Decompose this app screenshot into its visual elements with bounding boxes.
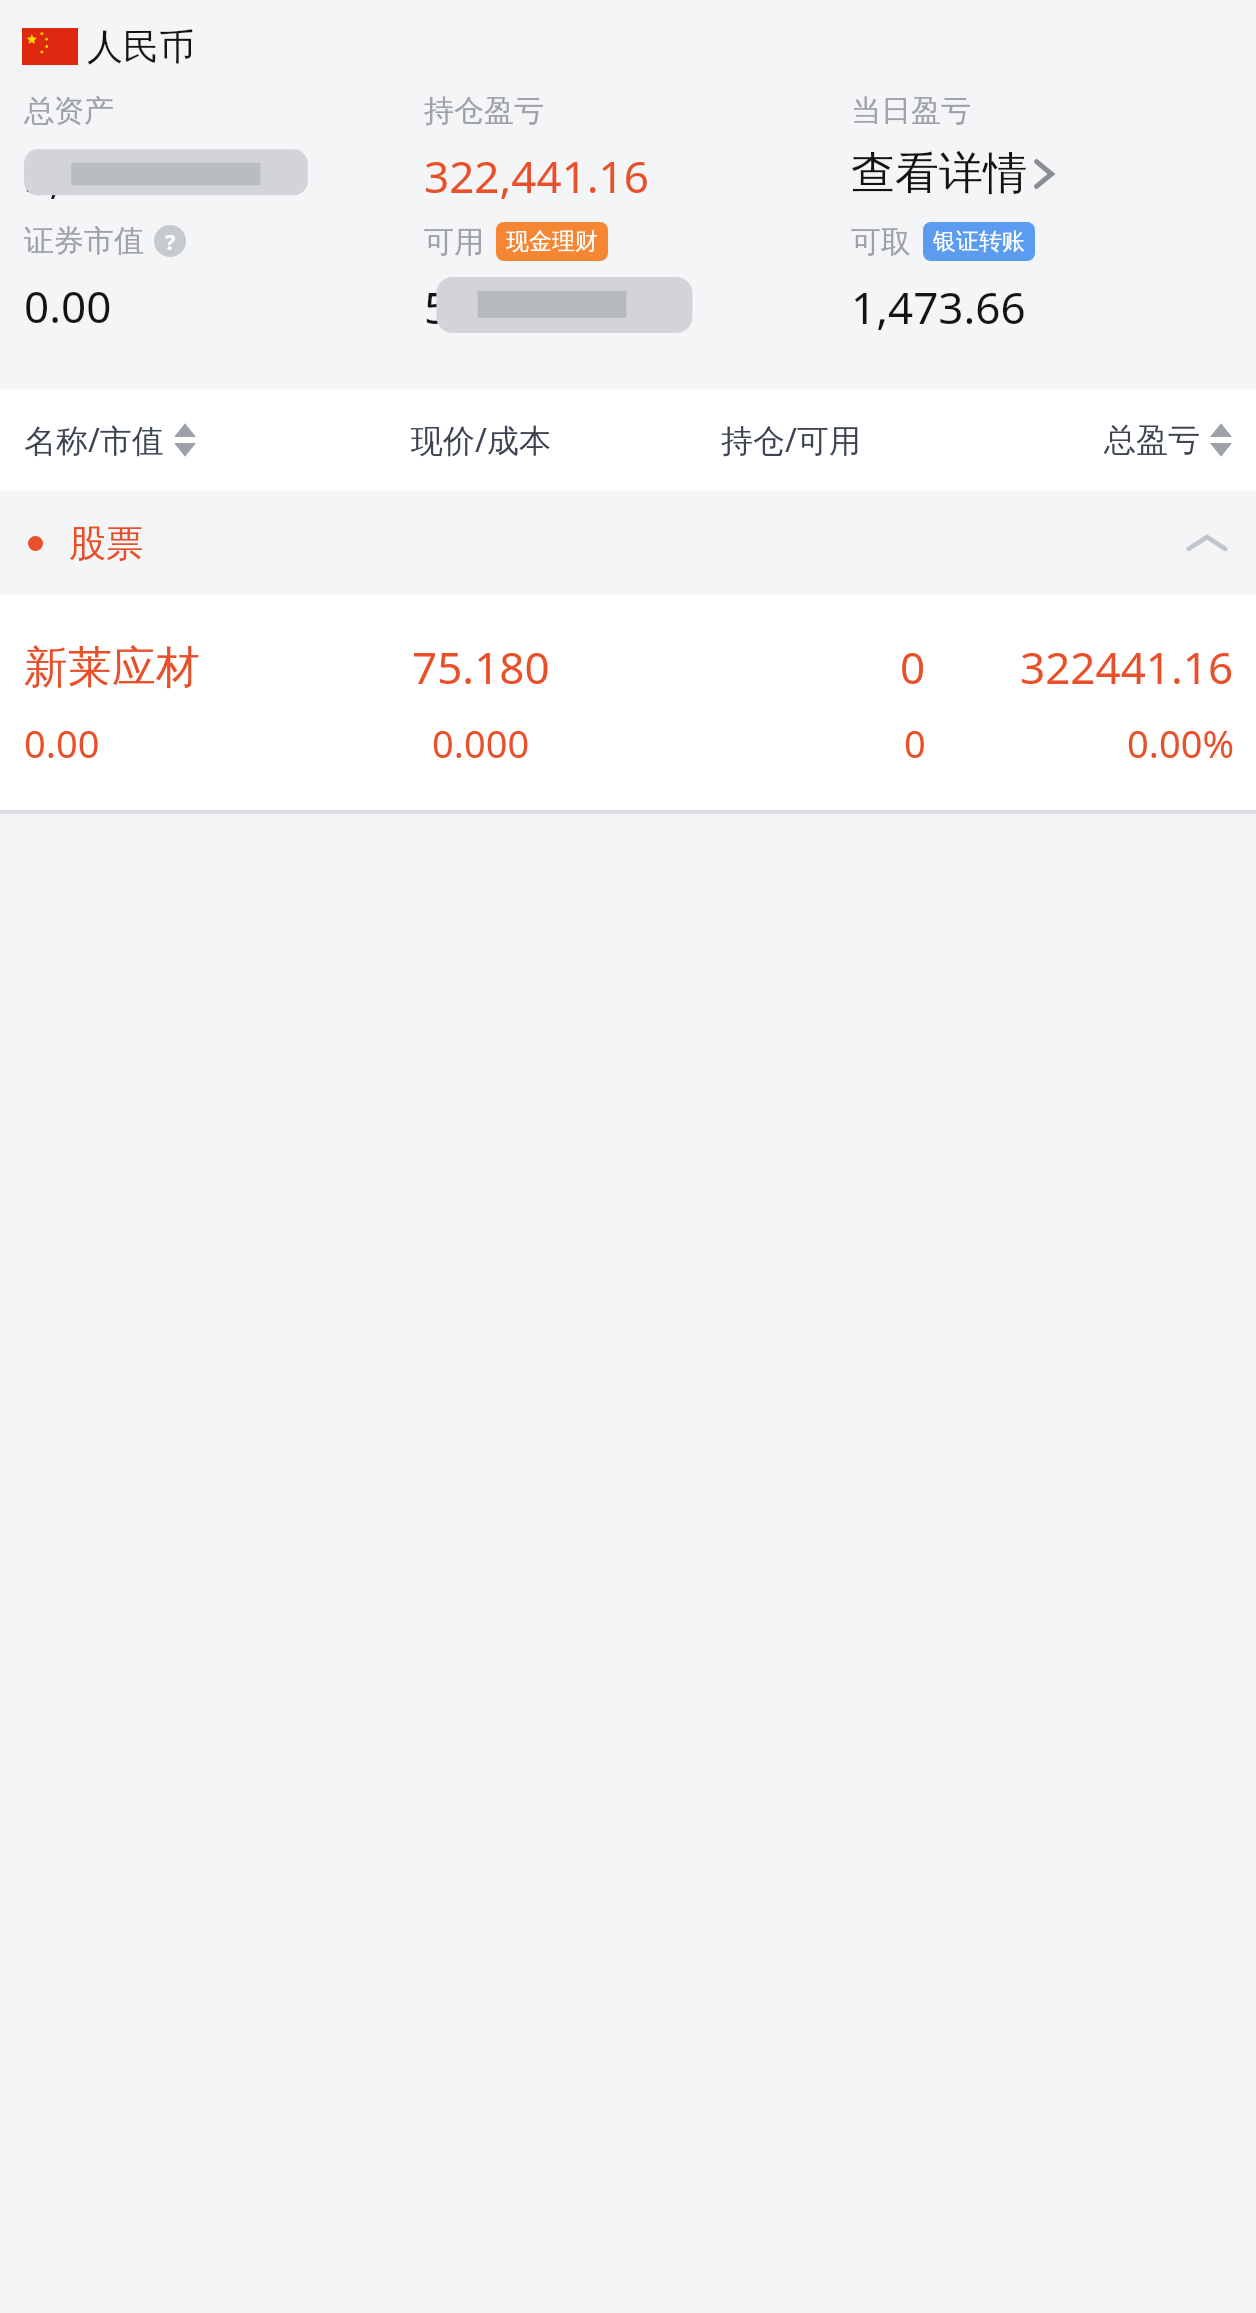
- staticText: 0.00%: [1127, 717, 1234, 769]
- staticText: 1,473.66: [851, 277, 1026, 337]
- staticText: 现价/成本: [411, 418, 551, 462]
- button[interactable]: 银证转账: [923, 222, 1035, 261]
- staticText: 新莱应材: [24, 640, 200, 695]
- button[interactable]: 查看详情: [851, 146, 1061, 201]
- staticText: 322441.16: [1020, 637, 1234, 697]
- staticText: 持仓/可用: [721, 418, 861, 462]
- staticText: 0.00: [24, 276, 112, 336]
- staticText: 322,441.16: [424, 146, 649, 206]
- other: 排序: [174, 421, 196, 459]
- other: 收起: [1184, 528, 1230, 558]
- staticText: 5, 52: [24, 146, 215, 202]
- staticText: 证券市值: [24, 222, 144, 260]
- other: 人民币: [22, 28, 78, 65]
- staticText: ?: [165, 226, 176, 256]
- staticText: 持仓盈亏: [424, 92, 544, 130]
- button[interactable]: 总盈亏: [946, 420, 1232, 460]
- staticText: 人民币: [87, 24, 195, 69]
- staticText: 0: [904, 717, 926, 769]
- staticText: 股票: [69, 520, 143, 567]
- button[interactable]: 人民币: [0, 0, 1256, 92]
- staticText: 0.000: [432, 717, 530, 769]
- button[interactable]: 新莱应材: [0, 595, 1256, 810]
- staticText: 可取: [851, 223, 911, 261]
- button[interactable]: 现金理财: [496, 222, 608, 261]
- button[interactable]: 股票: [0, 491, 1256, 595]
- staticText: 查看详情: [851, 146, 1027, 201]
- button[interactable]: 现价/成本: [326, 418, 636, 462]
- button[interactable]: 持仓/可用: [636, 418, 946, 462]
- staticText: 总盈亏: [1104, 420, 1200, 460]
- staticText: 可用: [424, 223, 484, 261]
- staticText: 75.180: [412, 637, 550, 697]
- staticText: 现金理财: [506, 227, 598, 256]
- button[interactable]: 说明: [154, 225, 186, 257]
- staticText: 0.00: [24, 717, 100, 769]
- staticText: 总资产: [24, 92, 114, 130]
- staticText: 银证转账: [933, 227, 1025, 256]
- staticText: 名称/市值: [24, 418, 164, 462]
- staticText: 5 52: [424, 277, 626, 333]
- button[interactable]: 名称/市值: [24, 418, 326, 462]
- other: 排序: [1210, 421, 1232, 459]
- staticText: 0: [900, 637, 926, 697]
- staticText: 当日盈亏: [851, 92, 971, 130]
